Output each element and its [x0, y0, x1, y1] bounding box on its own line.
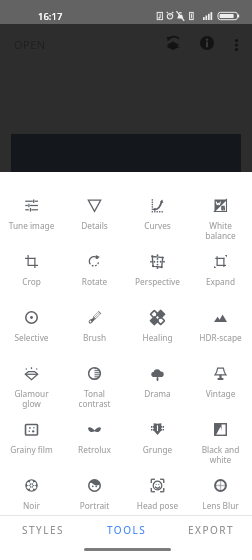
staticText: Glamour glow: [0, 388, 63, 410]
button[interactable]: Healing: [126, 294, 189, 350]
button[interactable]: Details: [63, 182, 126, 238]
button[interactable]: EXPORT: [168, 515, 252, 545]
staticText: Head pose: [126, 500, 189, 511]
staticText: Expand: [189, 276, 252, 287]
staticText: Grunge: [126, 444, 189, 455]
button[interactable]: Black and white: [189, 406, 252, 462]
button[interactable]: Info: [193, 29, 221, 57]
button[interactable]: Selective: [0, 294, 63, 350]
staticText: Grainy film: [0, 444, 63, 455]
button[interactable]: More options: [223, 31, 250, 58]
button[interactable]: Brush: [63, 294, 126, 350]
staticText: TOOLS: [107, 523, 147, 537]
staticText: Brush: [63, 332, 126, 343]
button[interactable]: Rotate: [63, 238, 126, 294]
button[interactable]: Grunge: [126, 406, 189, 462]
button[interactable]: Curves: [126, 182, 189, 238]
button[interactable]: Retrolux: [63, 406, 126, 462]
button[interactable]: Glamour glow: [0, 350, 63, 406]
staticText: Portrait: [63, 500, 126, 511]
button[interactable]: Expand: [189, 238, 252, 294]
button[interactable]: Head pose: [126, 462, 189, 518]
staticText: Selective: [0, 332, 63, 343]
button[interactable]: Lens Blur: [189, 462, 252, 518]
button[interactable]: Perspective: [126, 238, 189, 294]
staticText: HDR-scape: [189, 332, 252, 343]
staticText: Retrolux: [63, 444, 126, 455]
staticText: Drama: [126, 388, 189, 399]
staticText: Black and white: [189, 444, 252, 466]
staticText: STYLES: [22, 523, 64, 537]
staticText: Crop: [0, 276, 63, 287]
staticText: Tonal contrast: [63, 388, 126, 410]
staticText: EXPORT: [188, 523, 235, 537]
staticText: Noir: [0, 500, 63, 511]
staticText: Healing: [126, 332, 189, 343]
button[interactable]: Revert: [159, 29, 187, 57]
button[interactable]: Portrait: [63, 462, 126, 518]
button[interactable]: TOOLS: [84, 515, 168, 545]
button[interactable]: Tonal contrast: [63, 350, 126, 406]
staticText: 16:17: [38, 10, 63, 23]
button[interactable]: Noir: [0, 462, 63, 518]
button[interactable]: HDR-scape: [189, 294, 252, 350]
button[interactable]: Crop: [0, 238, 63, 294]
staticText: Lens Blur: [189, 500, 252, 511]
staticText: White balance: [189, 220, 252, 242]
button[interactable]: White balance: [189, 182, 252, 238]
staticText: Vintage: [189, 388, 252, 399]
staticText: Curves: [126, 220, 189, 231]
button[interactable]: Drama: [126, 350, 189, 406]
button[interactable]: Grainy film: [0, 406, 63, 462]
button[interactable]: STYLES: [0, 515, 84, 545]
staticText: Perspective: [126, 276, 189, 287]
button[interactable]: Vintage: [189, 350, 252, 406]
staticText: Tune image: [0, 220, 63, 231]
staticText: Details: [63, 220, 126, 231]
staticText: Rotate: [63, 276, 126, 287]
button[interactable]: Tune image: [0, 182, 63, 238]
staticText: OPEN: [14, 37, 46, 52]
